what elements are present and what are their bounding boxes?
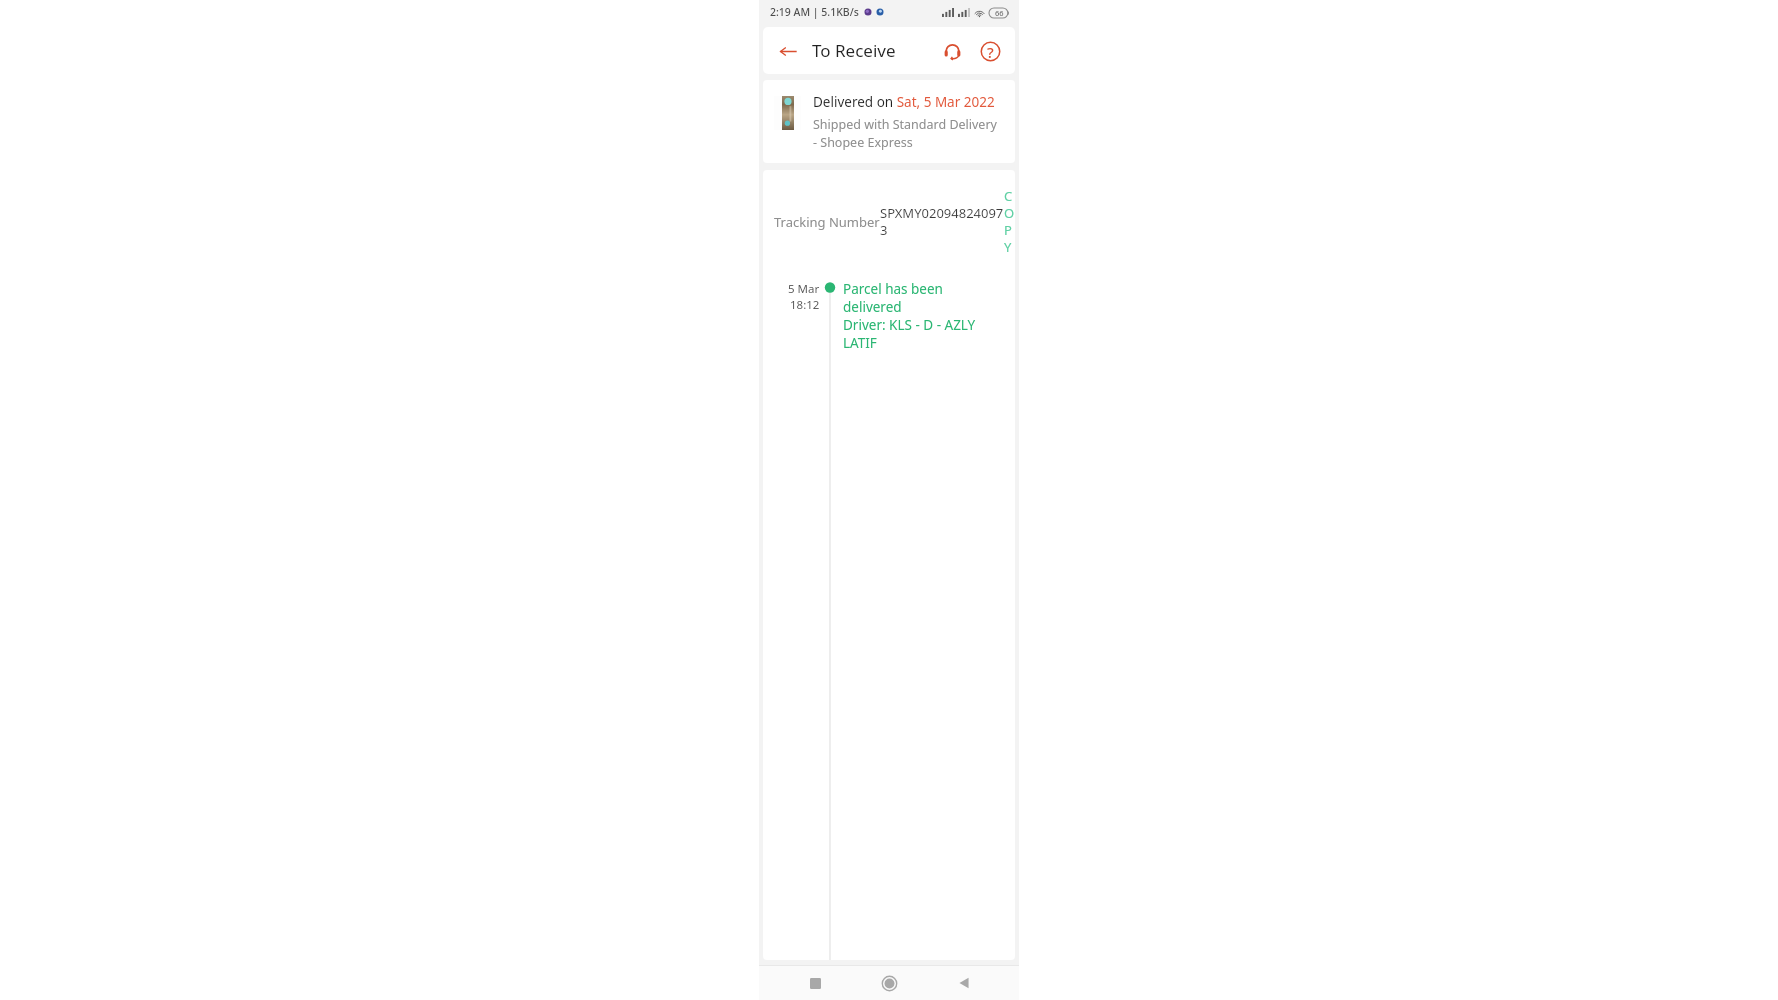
button[interactable]: Home bbox=[870, 966, 908, 1000]
staticText: Shipped with Standard Delivery - Shopee … bbox=[813, 116, 1001, 150]
staticText: 66 bbox=[995, 8, 1004, 18]
staticText: Driver: KLS - D - AZLY LATIF bbox=[843, 316, 1001, 352]
staticText: 2:19 AM | 5.1KB/s bbox=[770, 5, 859, 19]
button[interactable]: Customer support bbox=[937, 36, 967, 66]
staticText: To Receive bbox=[812, 39, 896, 62]
button[interactable]: Back bbox=[945, 966, 983, 1000]
staticText: Parcel has been delivered bbox=[843, 280, 1001, 316]
staticText: 18:12 bbox=[790, 297, 820, 313]
staticText: 5 Mar bbox=[788, 281, 820, 297]
button[interactable]: Delivered on Sat, 5 Mar 2022 bbox=[763, 80, 1015, 163]
staticText: Delivered on Sat, 5 Mar 2022 bbox=[813, 93, 995, 111]
button[interactable]: 5 Mar bbox=[774, 280, 1011, 960]
staticText: Tracking Number bbox=[774, 213, 880, 231]
button[interactable]: Help bbox=[975, 36, 1005, 66]
staticText: SPXMY020948240973 bbox=[880, 204, 1004, 239]
button[interactable]: Recent apps bbox=[796, 966, 834, 1000]
button[interactable]: Back bbox=[773, 36, 803, 66]
staticText: ? bbox=[987, 42, 994, 62]
